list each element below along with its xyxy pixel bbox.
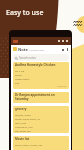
staticText: 10:30 AM — [57, 85, 67, 88]
button[interactable]: Search notes — [13, 54, 69, 61]
button[interactable]: Grid view — [61, 48, 64, 51]
staticText: Oil 2 tsp — [15, 69, 25, 72]
staticText: Onion — [15, 73, 22, 76]
staticText: dal, sugar, tea — [15, 129, 31, 132]
staticText: milk, curd — [15, 121, 27, 124]
staticText: a simple note — [29, 48, 45, 51]
button[interactable]: Movie list — [13, 136, 69, 150]
button[interactable]: Andhra Homestyle Chicken — [13, 62, 69, 89]
staticText: Dune, Tenet, Arrival, Her — [15, 143, 43, 146]
staticText: cooking oil, rice — [15, 125, 33, 128]
staticText: Andhra Homestyle Chicken — [15, 63, 56, 67]
staticText: Search notes — [19, 56, 36, 60]
staticText: Salt — [15, 81, 20, 84]
staticText: ginger garlic paste, oil — [15, 117, 40, 120]
staticText: Easy to use — [6, 8, 44, 18]
staticText: Movie list — [15, 137, 30, 141]
staticText: tomato, onion — [15, 113, 31, 116]
button[interactable]: grocery — [13, 106, 69, 133]
button[interactable]: More options — [66, 48, 69, 51]
staticText: grocery — [15, 107, 27, 111]
staticText: Dr Ranjan appointment on Saturday — [15, 93, 67, 101]
staticText: Note — [18, 47, 28, 52]
staticText: Ginger garlic — [15, 77, 30, 80]
button[interactable]: Dr Ranjan appointment on Saturday — [13, 92, 69, 103]
